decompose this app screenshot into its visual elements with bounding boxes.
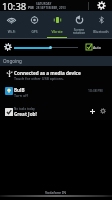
button[interactable]: BulB: [0, 84, 112, 103]
staticText: Great Job!: [14, 111, 37, 117]
button[interactable]: Task settings: [98, 106, 107, 115]
staticText: Screen rotation: [68, 27, 90, 35]
staticText: Connected as a media device: [14, 70, 81, 76]
staticText: GPS: [23, 29, 46, 33]
button[interactable]: GPS: [23, 11, 46, 38]
staticText: Vibrate: [46, 29, 68, 33]
button[interactable]: No tasks today: [0, 103, 112, 120]
staticText: Turn off: [14, 93, 28, 98]
staticText: BulB: [14, 87, 25, 93]
staticText: No tasks today: [14, 107, 35, 111]
button[interactable]: Settings: [94, 0, 108, 11]
button[interactable]: Screen rotation: [68, 11, 90, 38]
staticText: PM: [28, 5, 34, 10]
staticText: Wi-Fi: [0, 29, 23, 33]
staticText: Vodafone IN: [45, 190, 67, 195]
staticText: 28 SEPTEMBER, 2013: [36, 6, 66, 10]
staticText: Touch for other USB options.: [14, 76, 64, 81]
staticText: Bluetooth: [90, 29, 112, 33]
staticText: Ongoing: [3, 58, 22, 64]
staticText: Auto: [93, 45, 101, 50]
button[interactable]: Brightness: [2, 41, 13, 52]
button[interactable]: Wi-Fi: [0, 11, 23, 38]
button[interactable]: Add task: [87, 106, 97, 116]
staticText: SATURDAY: [36, 2, 52, 6]
button[interactable]: Vibrate: [46, 11, 68, 38]
button[interactable]: Auto: [85, 41, 109, 52]
staticText: 10:38 PM: [88, 88, 103, 93]
button[interactable]: Bluetooth: [90, 11, 112, 38]
staticText: 10:38: [2, 0, 27, 11]
button[interactable]: Connected as a media device: [0, 66, 112, 84]
